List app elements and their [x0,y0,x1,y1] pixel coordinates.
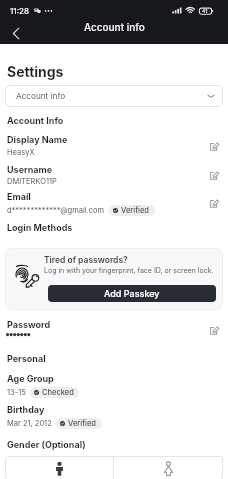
staticText: Verified [68,419,97,428]
button[interactable]: Back [6,23,26,43]
staticText: Age Group [7,373,54,384]
staticText: Account info [84,21,145,33]
staticText: Tired of passwords? [44,255,128,265]
button[interactable]: Edit Username [206,167,224,185]
staticText: Login Methods [7,222,73,233]
staticText: d*************@gmail.com [7,206,105,215]
staticText: 13-15 [7,388,26,397]
button[interactable]: Edit Display Name [206,138,224,156]
staticText: Mar 21, 2012 [7,419,52,428]
staticText: Gender (Optional) [7,439,86,450]
staticText: Personal [7,353,46,364]
staticText: Add Passkey [104,288,160,299]
button[interactable]: Edit Password [206,322,224,340]
button[interactable]: Female [114,456,223,479]
staticText: Settings [7,63,64,80]
staticText: Account info [16,91,66,101]
button[interactable]: Add Passkey [48,285,216,302]
staticText: 11:28 [10,6,30,16]
staticText: Account Info [7,115,64,126]
staticText: Display Name [7,134,68,145]
staticText: Email [7,191,31,202]
staticText: DMITERKO11P [7,177,57,186]
button[interactable]: Account info [5,85,223,107]
staticText: Password [7,319,51,330]
staticText: Log in with your fingerprint, face ID, o… [44,266,214,274]
button[interactable]: Male [5,456,113,479]
staticText: Verified [121,206,150,215]
staticText: Checked [42,388,74,397]
button[interactable]: Edit Email [206,195,224,213]
staticText: Username [7,164,53,175]
staticText: HeasyX [7,148,35,157]
staticText: 41 [202,8,208,14]
staticText: Birthday [7,404,45,415]
